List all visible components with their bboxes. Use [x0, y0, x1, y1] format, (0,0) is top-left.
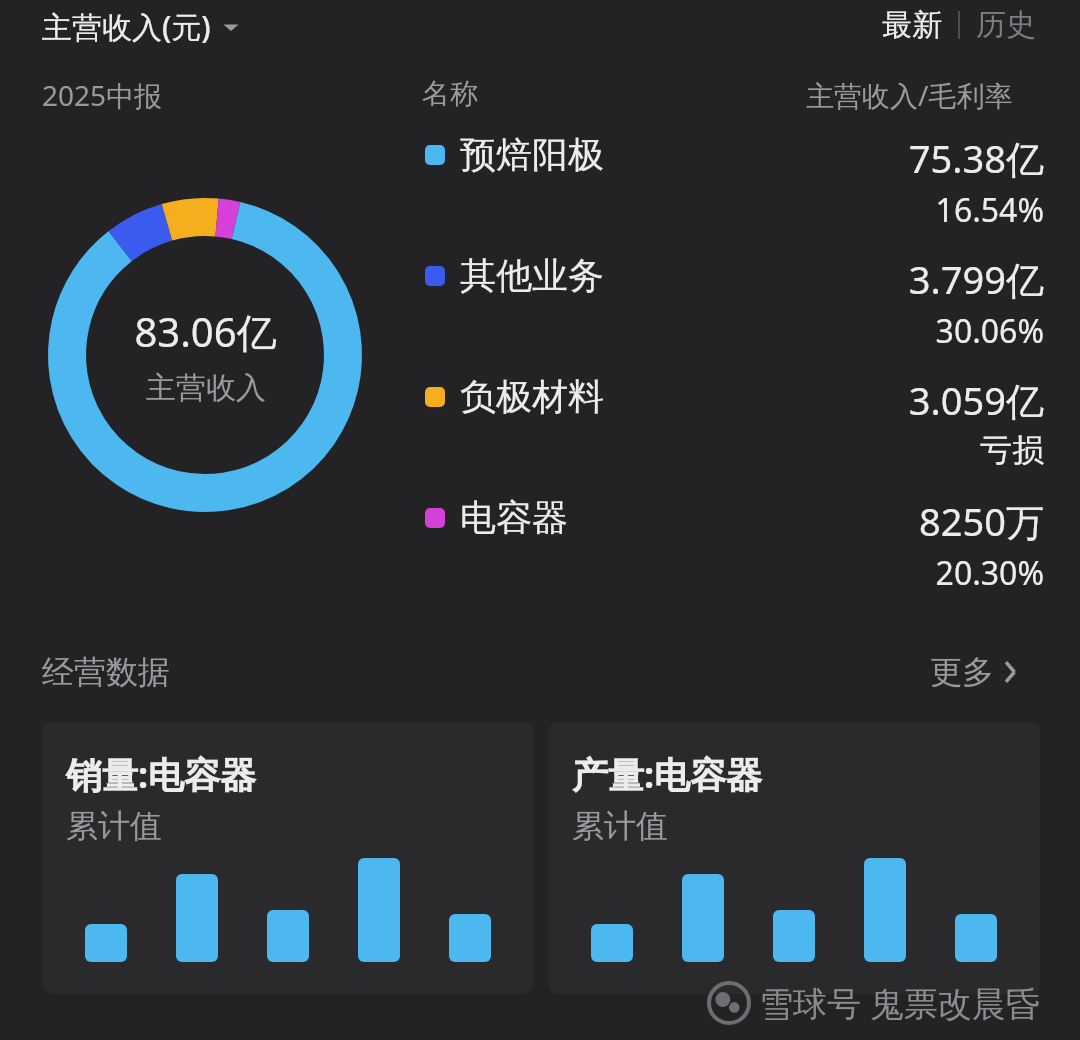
- button[interactable]: 历史: [972, 4, 1040, 46]
- staticText: 8250万: [919, 495, 1044, 547]
- staticText: 更多: [930, 652, 994, 692]
- button[interactable]: 其他业务: [410, 253, 1044, 365]
- button[interactable]: 83.06亿: [30, 180, 380, 530]
- staticText: 主营收入/毛利率: [806, 76, 1013, 114]
- staticText: 负极材料: [460, 374, 604, 419]
- button[interactable]: 负极材料: [410, 374, 1044, 486]
- staticText: 名称: [422, 76, 478, 111]
- button[interactable]: 主营收入(元): [42, 4, 241, 49]
- staticText: 累计值: [66, 806, 162, 846]
- staticText: 累计值: [572, 806, 668, 846]
- staticText: 主营收入: [146, 369, 266, 407]
- staticText: 30.06%: [935, 309, 1044, 353]
- button[interactable]: 最新: [878, 4, 946, 46]
- staticText: 20.30%: [935, 551, 1044, 595]
- staticText: 主营收入(元): [42, 6, 211, 47]
- staticText: 2025中报: [42, 76, 163, 114]
- staticText: 预焙阳极: [460, 132, 604, 177]
- staticText: 雪球号 鬼票改晨昏: [759, 980, 1040, 1026]
- staticText: 其他业务: [460, 253, 604, 298]
- button[interactable]: 经营数据: [42, 652, 170, 692]
- staticText: 亏损: [980, 430, 1044, 470]
- staticText: 16.54%: [935, 188, 1044, 232]
- staticText: 83.06亿: [134, 304, 277, 359]
- button[interactable]: 销量:电容器: [42, 722, 534, 994]
- staticText: 电容器: [460, 495, 568, 540]
- button[interactable]: 更多: [930, 652, 1018, 692]
- button[interactable]: 产量:电容器: [548, 722, 1040, 994]
- staticText: 3.059亿: [908, 374, 1044, 426]
- button[interactable]: 电容器: [410, 495, 1044, 607]
- staticText: 产量:电容器: [572, 750, 763, 799]
- staticText: 3.799亿: [908, 253, 1044, 305]
- staticText: 75.38亿: [908, 132, 1044, 184]
- staticText: 历史: [976, 6, 1036, 44]
- staticText: 最新: [882, 6, 942, 44]
- staticText: 销量:电容器: [66, 750, 257, 799]
- button[interactable]: 预焙阳极: [410, 132, 1044, 244]
